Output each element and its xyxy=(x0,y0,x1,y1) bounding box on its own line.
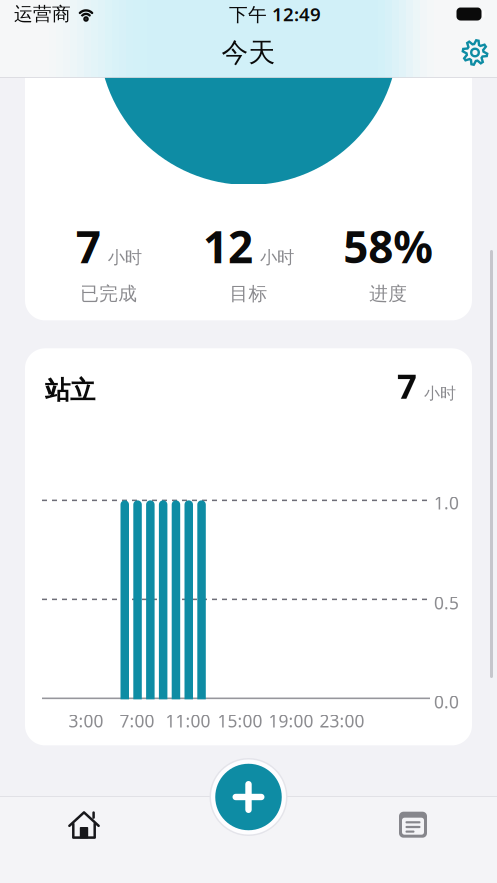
button[interactable]: 首页 xyxy=(39,797,129,853)
staticText: 7:00 xyxy=(119,709,154,732)
staticText: 进度 xyxy=(369,282,407,305)
button[interactable]: 记录 xyxy=(368,797,458,853)
staticText: 15:00 xyxy=(217,709,262,732)
staticText: 目标 xyxy=(229,282,267,305)
button[interactable]: 添加 xyxy=(209,758,287,836)
staticText: 58% xyxy=(343,217,433,275)
staticText: 站立 xyxy=(45,375,95,406)
staticText: 7 xyxy=(76,217,101,275)
staticText: 已完成 xyxy=(80,282,137,305)
staticText: 19:00 xyxy=(268,709,313,732)
staticText: 3:00 xyxy=(68,709,103,732)
staticText: 小时 xyxy=(108,247,142,268)
staticText: 小时 xyxy=(424,384,456,403)
staticText: 小时 xyxy=(260,247,294,268)
button[interactable]: 设置 xyxy=(453,30,497,74)
staticText: 12 xyxy=(203,217,253,275)
staticText: 0.0 xyxy=(434,690,459,713)
staticText: 运营商 xyxy=(14,2,71,25)
staticText: 11:00 xyxy=(165,709,210,732)
staticText: 7 xyxy=(397,362,417,408)
staticText: 下午 12:49 xyxy=(229,2,321,26)
staticText: 23:00 xyxy=(319,709,364,732)
staticText: 1.0 xyxy=(434,491,459,514)
staticText: 今天 xyxy=(221,36,275,69)
staticText: 0.5 xyxy=(434,591,459,614)
